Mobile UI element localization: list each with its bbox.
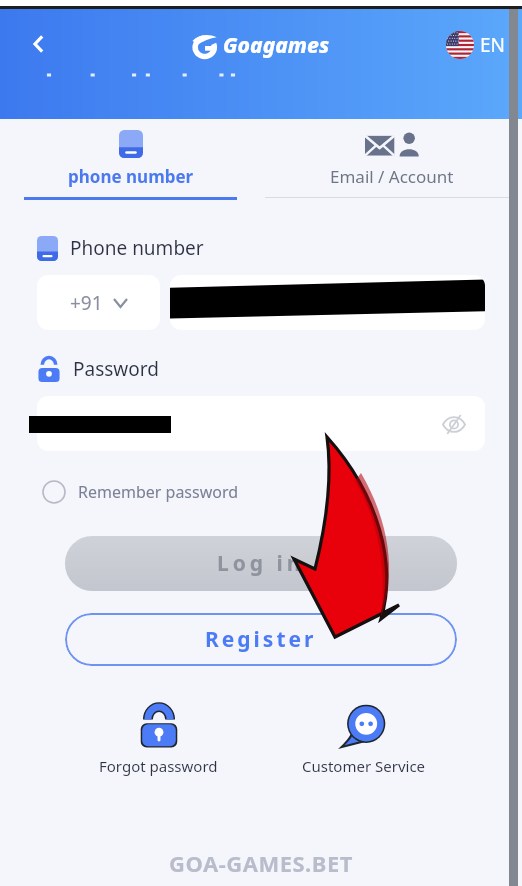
button[interactable]: Show password	[437, 407, 471, 441]
button[interactable]: EN	[446, 31, 506, 59]
staticText: Customer Service	[302, 756, 426, 776]
staticText: Phone number	[70, 235, 204, 261]
button[interactable]: Log in	[65, 536, 457, 591]
button[interactable]	[170, 275, 485, 330]
staticText: +91	[70, 290, 103, 316]
button[interactable]: phone number	[0, 119, 261, 207]
button[interactable]: Customer Service	[261, 704, 466, 776]
staticText: Log in	[217, 549, 305, 578]
button[interactable]: Goagames	[192, 31, 330, 60]
staticText: Remember password	[78, 481, 239, 503]
staticText: EN	[480, 32, 506, 58]
button[interactable]: Show password	[37, 396, 485, 451]
button[interactable]: +91	[37, 275, 160, 330]
button[interactable]: Back	[16, 21, 62, 67]
staticText: Register	[205, 625, 317, 654]
button[interactable]: Email / Account	[261, 119, 522, 207]
button[interactable]: Forgot password	[56, 704, 261, 776]
staticText: phone number	[68, 165, 194, 188]
staticText: Password	[73, 356, 159, 382]
staticText: GOA-GAMES.BET	[169, 848, 353, 878]
staticText: Email / Account	[330, 165, 454, 188]
button[interactable]: Register	[65, 613, 457, 666]
staticText: Forgot password	[99, 756, 218, 776]
staticText: Goagames	[223, 31, 330, 60]
button[interactable]: Remember password	[33, 471, 522, 513]
